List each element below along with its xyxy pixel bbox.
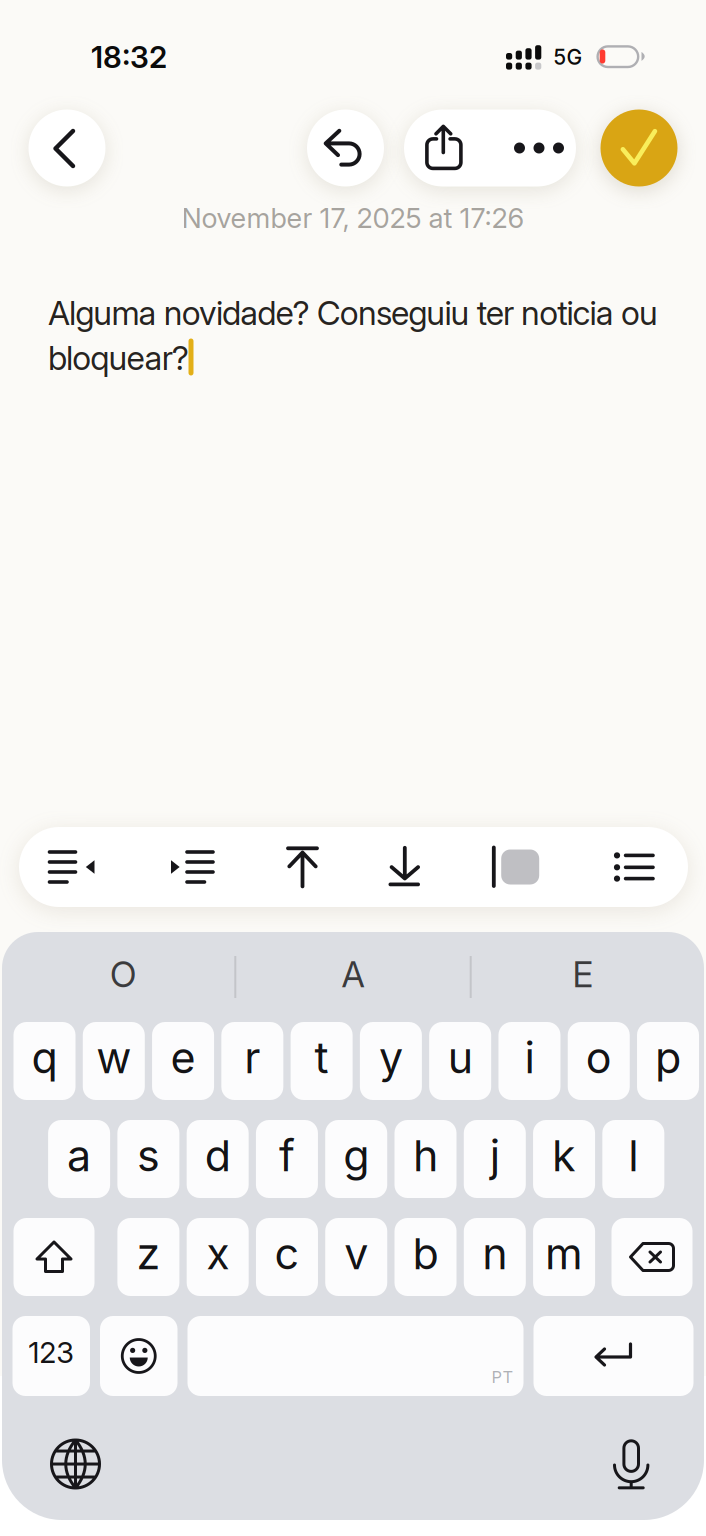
staticText: November 17, 2025 at 17:26 (181, 201, 524, 235)
staticText: h (413, 1129, 438, 1181)
staticText: A (341, 953, 364, 996)
button[interactable]: q (13, 1022, 75, 1100)
button[interactable]: Indent (144, 827, 240, 907)
staticText: e (171, 1031, 196, 1083)
button[interactable]: i (498, 1022, 560, 1100)
staticText: z (136, 1227, 160, 1279)
staticText: 5G (553, 44, 582, 70)
staticText: a (67, 1129, 91, 1181)
button[interactable]: Delete (611, 1218, 692, 1296)
staticText: b (412, 1227, 438, 1279)
staticText: PT (491, 1367, 513, 1387)
button[interactable]: A (238, 946, 468, 1008)
button[interactable]: Block (468, 827, 564, 907)
button[interactable]: Back (28, 109, 105, 186)
staticText: d (205, 1129, 231, 1181)
button[interactable]: e (152, 1022, 214, 1100)
staticText: f (279, 1129, 295, 1181)
staticText: i (524, 1031, 534, 1083)
button[interactable]: Shift (13, 1218, 94, 1296)
staticText: y (379, 1031, 403, 1083)
button[interactable]: Emoji (100, 1316, 177, 1396)
button[interactable]: v (325, 1218, 387, 1296)
button[interactable]: s (117, 1120, 179, 1198)
staticText: o (586, 1031, 612, 1083)
staticText: u (448, 1031, 473, 1083)
staticText: j (490, 1129, 500, 1181)
button[interactable]: c (256, 1218, 318, 1296)
staticText: t (315, 1031, 329, 1083)
button[interactable]: o (568, 1022, 630, 1100)
button[interactable]: t (291, 1022, 353, 1100)
button[interactable]: Done (600, 109, 677, 186)
button[interactable]: Next keyboard (35, 1429, 115, 1499)
staticText: 123 (28, 1335, 74, 1370)
button[interactable]: d (187, 1120, 249, 1198)
button[interactable]: y (360, 1022, 422, 1100)
staticText: p (655, 1031, 681, 1083)
button[interactable]: b (394, 1218, 456, 1296)
staticText: n (482, 1227, 507, 1279)
button[interactable]: p (637, 1022, 699, 1100)
button[interactable]: O (3, 946, 233, 1008)
button[interactable]: E (473, 946, 703, 1008)
button[interactable]: m (533, 1218, 595, 1296)
staticText: v (344, 1227, 368, 1279)
button[interactable]: Return (533, 1316, 693, 1396)
button[interactable]: k (533, 1120, 595, 1198)
staticText: x (206, 1227, 229, 1279)
staticText: l (628, 1129, 638, 1181)
button[interactable]: Move to bottom (356, 827, 452, 907)
staticText: q (31, 1031, 57, 1083)
staticText: O (110, 953, 136, 996)
button[interactable]: r (221, 1022, 283, 1100)
staticText: r (244, 1031, 260, 1083)
staticText: Alguma novidade? Conseguiu ter noticia o… (48, 293, 658, 378)
button[interactable]: n (464, 1218, 526, 1296)
staticText: 18:32 (91, 39, 167, 75)
button[interactable]: g (325, 1120, 387, 1198)
staticText: c (274, 1227, 299, 1279)
button[interactable]: w (83, 1022, 145, 1100)
button[interactable]: u (429, 1022, 491, 1100)
button[interactable]: h (394, 1120, 456, 1198)
staticText: E (572, 953, 593, 996)
staticText: g (343, 1129, 369, 1181)
button[interactable]: Outdent (24, 827, 120, 907)
button[interactable]: Dictate (602, 1433, 662, 1495)
button[interactable]: f (256, 1120, 318, 1198)
staticText: s (137, 1129, 160, 1181)
button[interactable]: x (187, 1218, 249, 1296)
button[interactable]: Move to top (254, 827, 350, 907)
staticText: w (96, 1031, 131, 1083)
button[interactable]: z (117, 1218, 179, 1296)
button[interactable]: j (464, 1120, 526, 1198)
button[interactable]: More (496, 109, 582, 186)
button[interactable]: Undo (307, 109, 384, 186)
staticText: k (552, 1129, 576, 1181)
button[interactable]: l (602, 1120, 664, 1198)
button[interactable]: a (48, 1120, 110, 1198)
button[interactable]: List (586, 827, 682, 907)
button[interactable]: Share (401, 109, 487, 186)
button[interactable]: Numbers (12, 1316, 90, 1396)
staticText: m (545, 1227, 583, 1279)
button[interactable]: Space (187, 1316, 523, 1396)
